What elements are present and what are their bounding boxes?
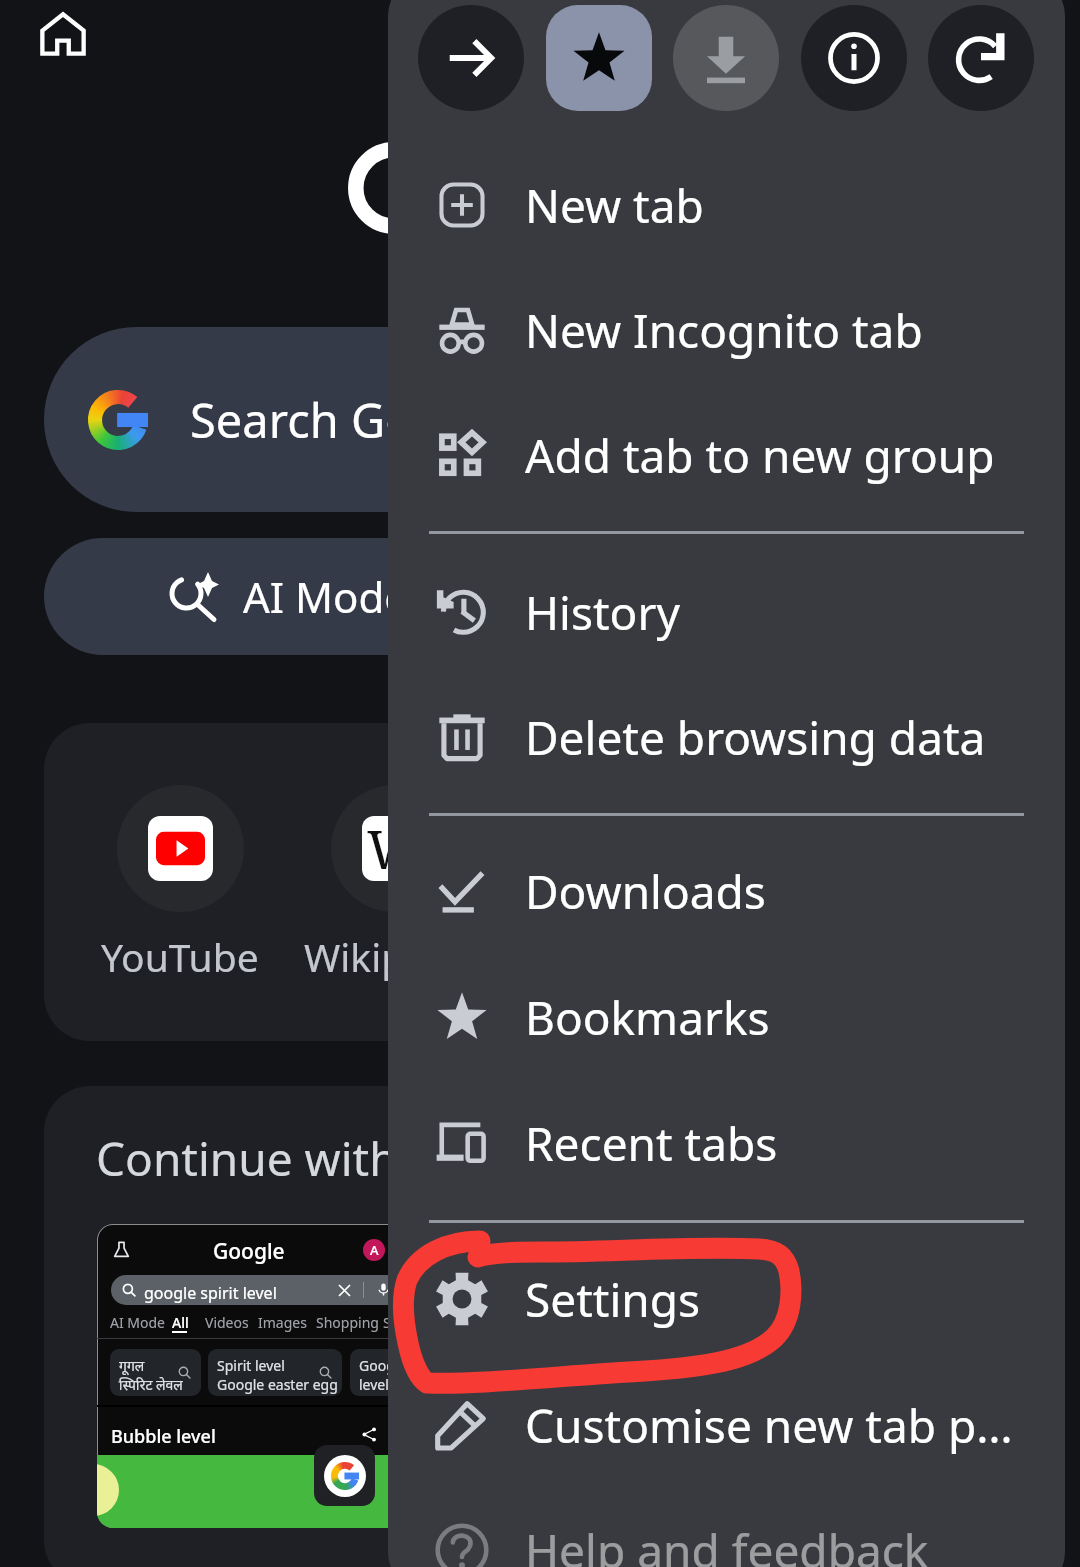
button[interactable]: W xyxy=(295,785,493,983)
staticText: Downloads xyxy=(525,860,766,923)
staticText: Bookmarks xyxy=(525,986,770,1049)
button[interactable]: Bookmarks xyxy=(388,957,1065,1077)
button[interactable]: Delete browsing data xyxy=(388,677,1065,797)
staticText: All xyxy=(172,1313,189,1332)
staticText: New tab xyxy=(525,174,704,237)
button[interactable]: Page info xyxy=(801,5,907,111)
button[interactable]: Goog xyxy=(350,1349,460,1396)
button[interactable]: Bookmark xyxy=(546,5,652,111)
staticText: Videos xyxy=(205,1313,249,1332)
button[interactable]: Home xyxy=(39,9,87,57)
staticText: New Incognito tab xyxy=(525,299,923,362)
button[interactable]: Add tab to new group xyxy=(388,395,1065,515)
button[interactable]: History xyxy=(388,552,1065,672)
button[interactable]: गूगल xyxy=(110,1349,201,1396)
button[interactable]: YouTube xyxy=(81,785,279,983)
button[interactable]: Google xyxy=(97,1224,517,1528)
button[interactable]: Help and feedback xyxy=(388,1490,1065,1567)
staticText: Goog xyxy=(359,1356,395,1375)
button[interactable]: Customise new tab p… xyxy=(388,1365,1065,1485)
staticText: स्पिरिट लेवल xyxy=(119,1375,183,1394)
staticText: Google easter egg xyxy=(217,1375,338,1394)
button[interactable]: Spirit level xyxy=(208,1349,342,1396)
button[interactable]: Downloads xyxy=(388,831,1065,951)
staticText: level A xyxy=(359,1375,402,1394)
button[interactable]: New Incognito tab xyxy=(388,270,1065,390)
button[interactable]: Forward xyxy=(418,5,524,111)
staticText: Customise new tab p… xyxy=(525,1394,1013,1457)
staticText: YouTube xyxy=(101,930,259,983)
staticText: Settings xyxy=(525,1268,701,1331)
staticText: google spirit level xyxy=(144,1282,277,1304)
staticText: S xyxy=(383,1313,391,1332)
button[interactable]: Download xyxy=(673,5,779,111)
staticText: A xyxy=(370,1241,379,1259)
button[interactable]: AI Mode xyxy=(44,538,484,655)
staticText: Help and feedback xyxy=(525,1519,929,1567)
staticText: AI Mode xyxy=(243,568,409,625)
button[interactable]: Reload xyxy=(928,5,1034,111)
button[interactable]: Settings xyxy=(388,1239,1065,1359)
staticText: Wikipedia xyxy=(304,930,484,983)
staticText: Google xyxy=(213,1237,285,1266)
staticText: Search Google or type URL xyxy=(190,388,544,452)
staticText: Bubble level xyxy=(111,1424,216,1449)
staticText: Spirit level xyxy=(217,1356,285,1375)
staticText: W xyxy=(367,816,422,878)
staticText: Add tab to new group xyxy=(525,424,995,487)
staticText: गूगल xyxy=(119,1356,145,1375)
staticText: History xyxy=(525,581,680,644)
staticText: AI Mode xyxy=(110,1313,166,1332)
staticText: Delete browsing data xyxy=(525,706,986,769)
button[interactable]: Search Google or type URL xyxy=(44,327,544,512)
staticText: Shopping xyxy=(316,1313,379,1332)
staticText: Images xyxy=(258,1313,307,1332)
staticText: Recent tabs xyxy=(525,1112,778,1175)
staticText: Continue with xyxy=(96,1127,398,1190)
button[interactable]: New tab xyxy=(388,145,1065,265)
button[interactable]: Recent tabs xyxy=(388,1083,1065,1203)
